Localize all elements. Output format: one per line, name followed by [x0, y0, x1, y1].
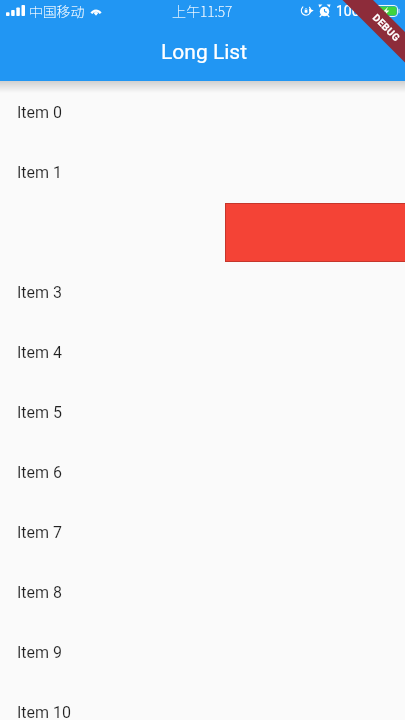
button[interactable]: Item 4 — [0, 321, 405, 381]
button[interactable]: Item 8 — [0, 561, 405, 621]
staticText: Item 4 — [17, 343, 63, 362]
button[interactable]: Item 1 — [0, 141, 405, 201]
staticText: Long List — [161, 40, 248, 65]
button[interactable]: Item 7 — [0, 501, 405, 561]
staticText: Item 1 — [17, 163, 63, 182]
staticText: Item 7 — [17, 523, 63, 542]
staticText: Item 5 — [17, 403, 63, 422]
staticText: Item 9 — [17, 643, 63, 662]
staticText: Item 0 — [17, 103, 63, 122]
staticText: 上午11:57 — [172, 1, 233, 21]
staticText: Item 10 — [17, 703, 72, 720]
button[interactable]: Item 5 — [0, 381, 405, 441]
button[interactable]: Item 6 — [0, 441, 405, 501]
button[interactable]: Item 10 — [0, 681, 405, 720]
other: Debug banner — [341, 0, 405, 64]
staticText: Item 8 — [17, 583, 63, 602]
button[interactable]: Item 9 — [0, 621, 405, 681]
button[interactable]: Item 3 — [0, 261, 405, 321]
staticText: DEBUG — [370, 12, 402, 44]
staticText: Item 3 — [17, 283, 63, 302]
staticText: Item 6 — [17, 463, 63, 482]
staticText: 中国移动 — [29, 1, 85, 21]
staticText: 100% — [336, 3, 370, 19]
button[interactable]: Item 0 — [0, 81, 405, 141]
